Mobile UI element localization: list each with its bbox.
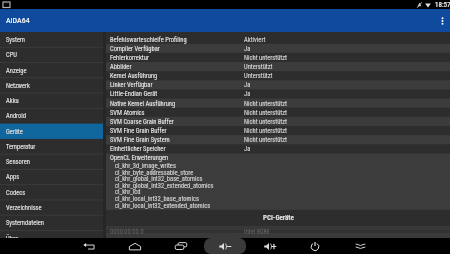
button[interactable]: OpenCL Erweiterungen <box>106 153 450 210</box>
staticText: Nicht unterstützt <box>244 109 288 117</box>
staticText: Befehlswarteschleife Profiling <box>110 36 244 44</box>
staticText: PCI-Geräte <box>263 214 294 222</box>
staticText: Einheitlicher Speicher <box>110 145 244 153</box>
staticText: Ja <box>244 81 251 89</box>
staticText: Intel 8086 <box>244 228 270 236</box>
button[interactable]: Netzwerk <box>0 78 103 93</box>
button[interactable]: Collapse <box>339 238 381 254</box>
staticText: Linker Verfügbar <box>110 81 244 89</box>
staticText: Android <box>6 112 27 120</box>
staticText: Geräte <box>6 128 23 136</box>
button[interactable]: Akku <box>0 93 103 108</box>
staticText: Fehlerkorrektur <box>110 54 244 62</box>
staticText: SVM Fine Grain Buffer <box>110 127 244 135</box>
staticText: cl_khr_local_int32_base_atomics <box>115 195 199 203</box>
button[interactable]: Home <box>114 238 156 254</box>
staticText: AIDA64 <box>6 16 30 25</box>
staticText: Native Kernel Ausführung <box>110 100 244 108</box>
button[interactable]: Little-Endian Gerät <box>106 89 450 98</box>
staticText: cl_khr_icd <box>115 188 141 196</box>
button[interactable]: Verzeichnisse <box>0 200 103 215</box>
button[interactable]: Power <box>294 238 336 254</box>
staticText: Ja <box>244 90 251 98</box>
staticText: Nicht unterstützt <box>244 136 288 144</box>
button[interactable]: Recent apps <box>160 238 202 254</box>
staticText: Akku <box>6 97 19 105</box>
staticText: 0000:00:00.0 <box>110 228 244 236</box>
staticText: Little-Endian Gerät <box>110 90 244 98</box>
staticText: OpenCL Erweiterungen <box>110 154 169 162</box>
staticText: cl_khr_global_int32_base_atomics <box>115 175 203 183</box>
button[interactable]: Apps <box>0 169 103 184</box>
staticText: Nicht unterstützt <box>244 100 288 108</box>
staticText: Temperatur <box>6 143 36 151</box>
staticText: Kernel Ausführung <box>110 72 244 80</box>
button[interactable]: Kernel Ausführung <box>106 71 450 80</box>
staticText: SVM Atomics <box>110 109 244 117</box>
button[interactable]: System <box>0 32 103 47</box>
staticText: 18:57 <box>435 1 450 9</box>
button[interactable]: Abbilder <box>106 62 450 71</box>
button[interactable]: SVM Atomics <box>106 108 450 117</box>
button[interactable]: CPU <box>0 47 103 62</box>
staticText: Nicht unterstützt <box>244 54 288 62</box>
staticText: Nicht unterstützt <box>244 127 288 135</box>
button[interactable]: Native Kernel Ausführung <box>106 99 450 108</box>
staticText: Anzeige <box>6 67 27 75</box>
staticText: Nicht unterstützt <box>244 118 288 126</box>
staticText: System <box>6 36 25 44</box>
button[interactable]: More options <box>434 9 450 32</box>
staticText: Compiler Verfügbar <box>110 45 244 53</box>
button[interactable]: Fehlerkorrektur <box>106 53 450 62</box>
button[interactable]: SVM Fine Grain Buffer <box>106 126 450 135</box>
staticText: Unterstützt <box>244 63 273 71</box>
staticText: SVM Fine Grain System <box>110 136 244 144</box>
button[interactable]: Sensoren <box>0 154 103 169</box>
button[interactable]: Back <box>68 238 110 254</box>
staticText: Verzeichnisse <box>6 204 42 212</box>
staticText: Apps <box>6 173 20 181</box>
staticText: Sensoren <box>6 158 30 166</box>
button[interactable]: SVM Fine Grain System <box>106 135 450 144</box>
staticText: Ja <box>244 145 251 153</box>
button[interactable]: PCI-Geräte <box>106 210 450 226</box>
button[interactable]: Volume up <box>249 238 291 254</box>
button[interactable]: Einheitlicher Speicher <box>106 144 450 153</box>
staticText: cl_khr_byte_addressable_store <box>115 169 194 177</box>
button[interactable]: Volume down <box>204 238 246 254</box>
staticText: cl_khr_local_int32_extended_atomics <box>115 202 211 210</box>
staticText: Netzwerk <box>6 82 31 90</box>
staticText: Aktiviert <box>244 36 266 44</box>
staticText: Ja <box>244 45 251 53</box>
staticText: SVM Coarse Grain Buffer <box>110 118 244 126</box>
staticText: Abbilder <box>110 63 244 71</box>
button[interactable]: Systemdateien <box>0 215 103 230</box>
button[interactable]: Compiler Verfügbar <box>106 44 450 53</box>
button[interactable]: Temperatur <box>0 139 103 154</box>
staticText: Codecs <box>6 189 26 197</box>
staticText: cl_khr_global_int32_extended_atomics <box>115 182 214 190</box>
button[interactable]: Linker Verfügbar <box>106 80 450 89</box>
button[interactable]: Android <box>0 108 103 123</box>
button[interactable]: Geräte <box>0 124 103 139</box>
staticText: CPU <box>6 51 17 59</box>
button[interactable]: SVM Coarse Grain Buffer <box>106 117 450 126</box>
button[interactable]: Befehlswarteschleife Profiling <box>106 35 450 44</box>
button[interactable]: Anzeige <box>0 63 103 78</box>
staticText: Unterstützt <box>244 72 273 80</box>
staticText: Systemdateien <box>6 219 44 227</box>
button[interactable]: Über <box>0 231 103 246</box>
staticText: cl_khr_3d_image_writes <box>115 162 176 170</box>
button[interactable]: Codecs <box>0 185 103 200</box>
staticText: Über <box>6 235 18 243</box>
